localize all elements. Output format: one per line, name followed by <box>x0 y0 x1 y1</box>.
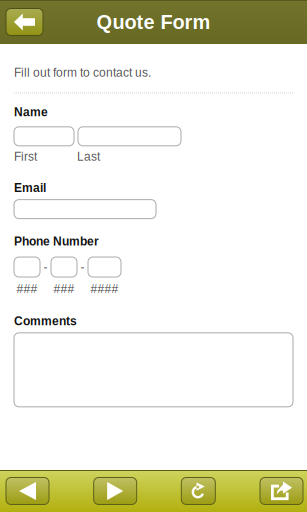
staticText: - <box>43 260 47 274</box>
button[interactable]: Back <box>6 477 49 504</box>
staticText: First <box>14 150 37 163</box>
staticText: - <box>80 260 84 274</box>
staticText: Comments <box>14 314 77 328</box>
staticText: Fill out form to contact us. <box>14 66 151 79</box>
button[interactable]: Back <box>6 8 43 35</box>
staticText: Last <box>77 150 100 163</box>
staticText: Name <box>14 105 48 119</box>
staticText: ### <box>53 282 74 295</box>
button[interactable]: Refresh <box>181 477 215 504</box>
staticText: Phone Number <box>14 235 99 248</box>
staticText: Quote Form <box>96 11 210 33</box>
button[interactable]: Share <box>260 477 303 504</box>
staticText: ### <box>16 282 37 295</box>
staticText: Email <box>14 181 46 195</box>
staticText: #### <box>90 282 118 295</box>
button[interactable]: Forward <box>94 477 137 504</box>
